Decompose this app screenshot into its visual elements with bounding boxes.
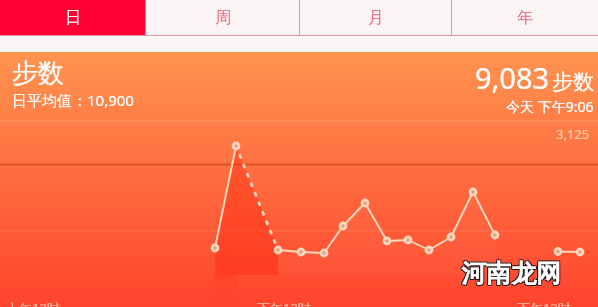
- staticText: 9,083: [475, 58, 550, 97]
- staticText: 河南龙网: [461, 257, 561, 288]
- staticText: 上午12时: [6, 299, 60, 307]
- staticText: 河南龙网: [462, 259, 562, 290]
- staticText: 下午12时: [257, 299, 311, 307]
- staticText: 步数: [552, 69, 594, 95]
- staticText: 日平均值：10,900: [12, 90, 134, 110]
- other: Watermark: [461, 258, 561, 289]
- staticText: 河南龙网: [460, 259, 560, 290]
- button[interactable]: 日: [0, 0, 145, 35]
- other: Steps chart: [0, 52, 598, 307]
- staticText: 日: [65, 8, 81, 28]
- button[interactable]: 年: [452, 0, 598, 35]
- staticText: 周: [215, 8, 231, 28]
- staticText: 河南龙网: [462, 257, 562, 288]
- staticText: 河南龙网: [461, 258, 561, 289]
- staticText: 月: [368, 8, 384, 28]
- button[interactable]: Steps chart: [0, 52, 598, 307]
- staticText: 河南龙网: [460, 258, 560, 289]
- staticText: 河南龙网: [460, 257, 560, 288]
- button[interactable]: 周: [146, 0, 299, 35]
- staticText: 河南龙网: [462, 258, 562, 289]
- staticText: 下午12时: [517, 299, 571, 307]
- staticText: 步数: [12, 57, 64, 90]
- staticText: 年: [517, 8, 533, 28]
- staticText: 3,125: [556, 125, 590, 143]
- button[interactable]: 月: [300, 0, 451, 35]
- staticText: 今天 下午9:06: [506, 97, 594, 116]
- staticText: 河南龙网: [461, 259, 561, 290]
